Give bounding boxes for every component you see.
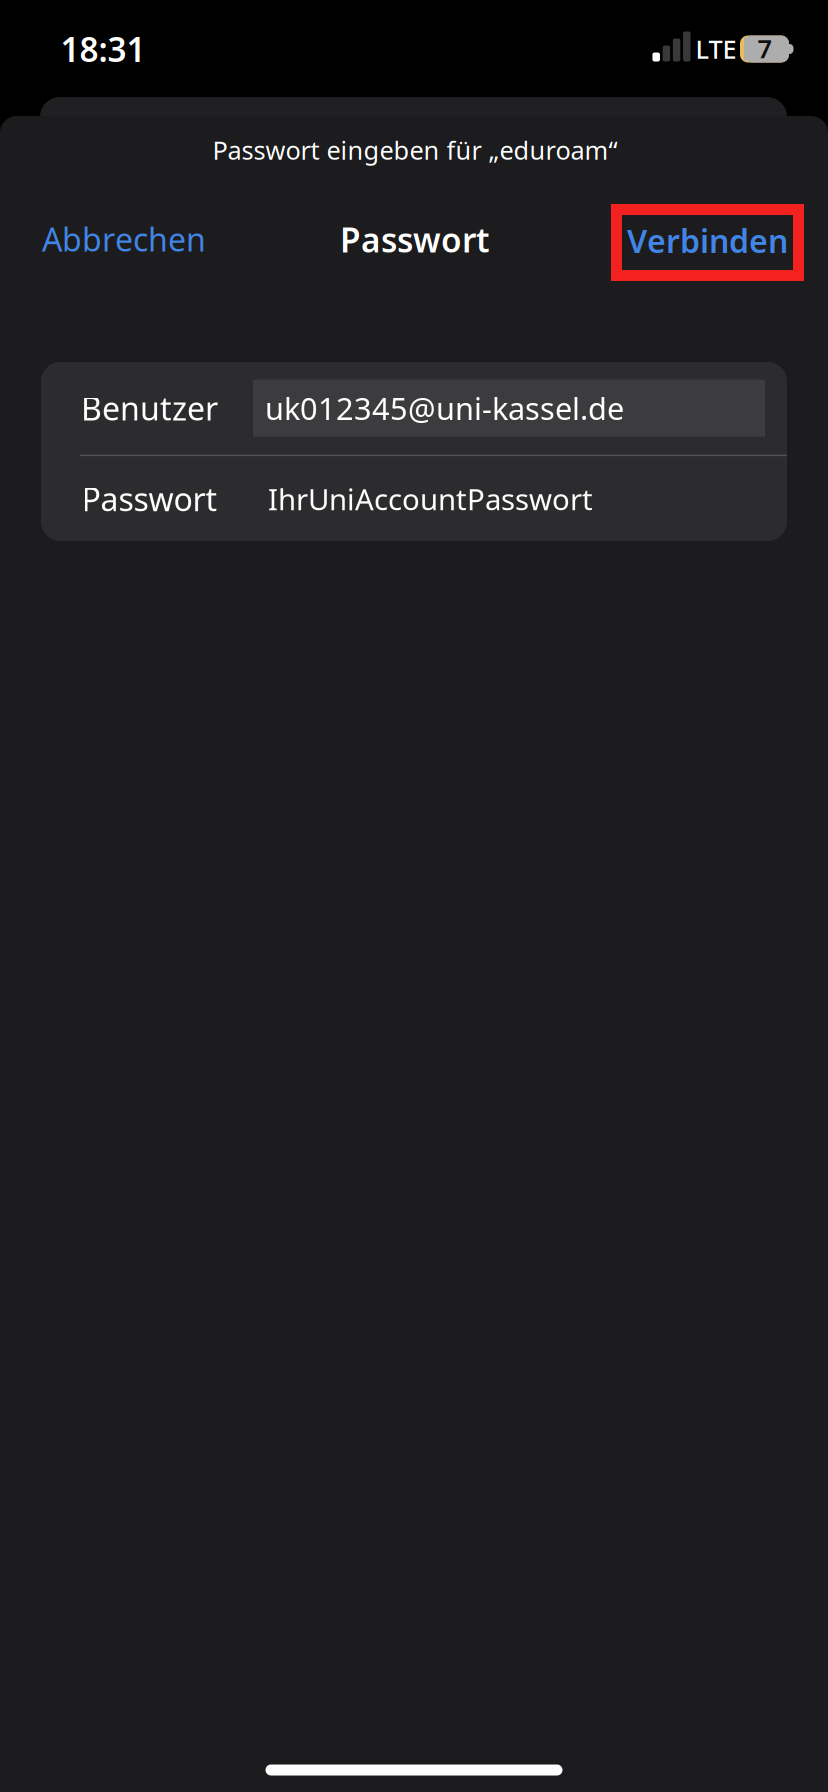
button[interactable]: Passwort xyxy=(41,456,787,541)
staticText: Passwort eingeben für „eduroam“ xyxy=(212,133,617,167)
staticText: LTE xyxy=(695,32,736,66)
staticText: Passwort xyxy=(340,217,490,262)
staticText: 18:31 xyxy=(60,27,145,71)
button[interactable]: Benutzer xyxy=(41,362,787,455)
staticText: Passwort xyxy=(81,478,217,520)
staticText: Verbinden xyxy=(627,219,788,262)
staticText: Benutzer xyxy=(81,387,218,429)
button[interactable]: Abbrechen xyxy=(42,199,266,279)
staticText: uk012345@uni-kassel.de xyxy=(265,388,624,428)
staticText: IhrUniAccountPasswort xyxy=(268,479,593,518)
button[interactable]: Verbinden xyxy=(611,204,804,281)
staticText: Abbrechen xyxy=(42,218,206,260)
staticText: 7 xyxy=(757,32,771,65)
